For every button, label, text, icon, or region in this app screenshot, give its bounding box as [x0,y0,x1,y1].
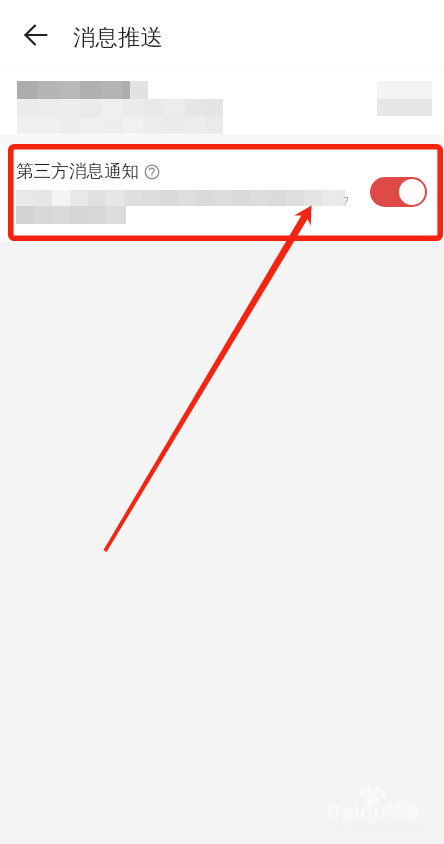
button[interactable]: 第三方消息通知 [0,150,444,235]
staticText: ? [344,194,349,208]
staticText: 消息推送 [73,23,163,51]
button[interactable]: 第三方消息通知开关，已开启 [370,177,427,207]
staticText: 第三方消息通知 [16,160,140,182]
button[interactable]: 帮助说明 [144,164,160,180]
button[interactable]: 返回 [14,13,58,57]
button[interactable]: 通知设置项 [0,71,444,135]
